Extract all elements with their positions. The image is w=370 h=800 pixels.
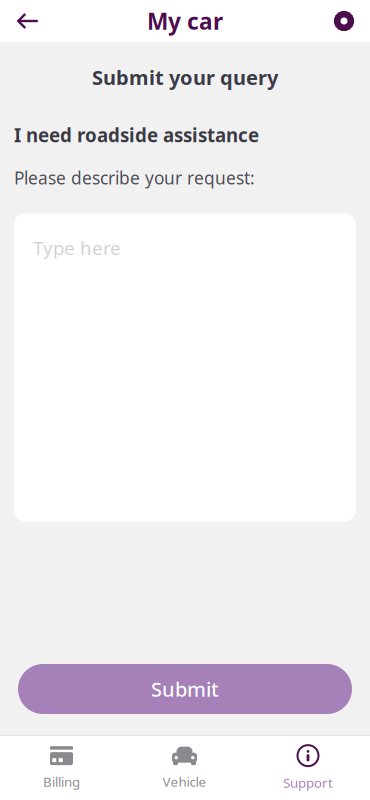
staticText: Submit your query	[92, 64, 278, 91]
button[interactable]: Billing	[0, 736, 123, 800]
staticText: Please describe your request:	[14, 166, 255, 189]
button[interactable]: Support	[246, 736, 370, 800]
staticText: Vehicle	[162, 773, 206, 790]
staticText: My car	[147, 6, 223, 36]
button[interactable]: Submit	[18, 664, 352, 714]
button[interactable]: Settings	[318, 0, 370, 42]
button[interactable]: Vehicle	[123, 736, 246, 800]
staticText: Submit	[151, 676, 219, 702]
staticText: Type here	[33, 235, 121, 260]
staticText: Billing	[43, 773, 80, 790]
button[interactable]: Back	[0, 0, 52, 42]
staticText: Support	[283, 774, 333, 791]
staticText: I need roadside assistance	[14, 123, 259, 147]
